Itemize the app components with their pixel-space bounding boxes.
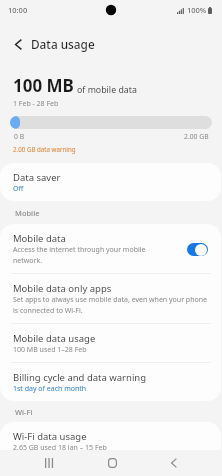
staticText: 100 MB: [13, 74, 74, 97]
staticText: 1st day of each month: [13, 384, 87, 394]
staticText: 100 MB used 1–28 Feb: [13, 345, 87, 355]
staticText: 10:00: [8, 5, 28, 15]
button[interactable]: Home: [92, 450, 132, 476]
staticText: Mobile: [15, 208, 222, 218]
button[interactable]: Back: [154, 450, 194, 476]
staticText: Set apps to always use mobile data, even…: [13, 295, 209, 316]
staticText: Mobile data: [13, 232, 66, 245]
staticText: 0 B: [14, 132, 25, 141]
staticText: 1 Feb - 28 Feb: [13, 99, 59, 109]
staticText: Access the internet through your mobile …: [13, 245, 176, 266]
button[interactable]: Navigate up: [6, 32, 30, 56]
button[interactable]: Mobile data: [0, 224, 221, 273]
button[interactable]: Data saver: [0, 163, 221, 201]
button[interactable]: Wi-Fi data usage: [0, 422, 221, 450]
staticText: Wi-Fi: [15, 407, 222, 417]
button[interactable]: Mobile data on: [187, 243, 208, 256]
staticText: 2.00 GB: [184, 132, 209, 141]
staticText: of mobile data: [77, 84, 137, 96]
staticText: Mobile data only apps: [13, 282, 112, 295]
staticText: 2.65 GB used 18 Jan – 15 Feb: [13, 443, 107, 450]
button[interactable]: Mobile data usage: [0, 324, 221, 362]
staticText: Data saver: [13, 171, 61, 184]
staticText: Mobile data usage: [13, 332, 96, 345]
button[interactable]: Recent apps: [29, 450, 69, 476]
staticText: Wi-Fi data usage: [13, 430, 87, 443]
staticText: Data usage: [31, 36, 95, 52]
staticText: Off: [13, 184, 24, 194]
staticText: 2.00 GB data warning: [13, 145, 76, 153]
button[interactable]: Billing cycle and data warning: [0, 363, 221, 401]
button[interactable]: Mobile data only apps: [0, 274, 221, 323]
staticText: Billing cycle and data warning: [13, 371, 147, 384]
staticText: 100%: [187, 5, 207, 15]
